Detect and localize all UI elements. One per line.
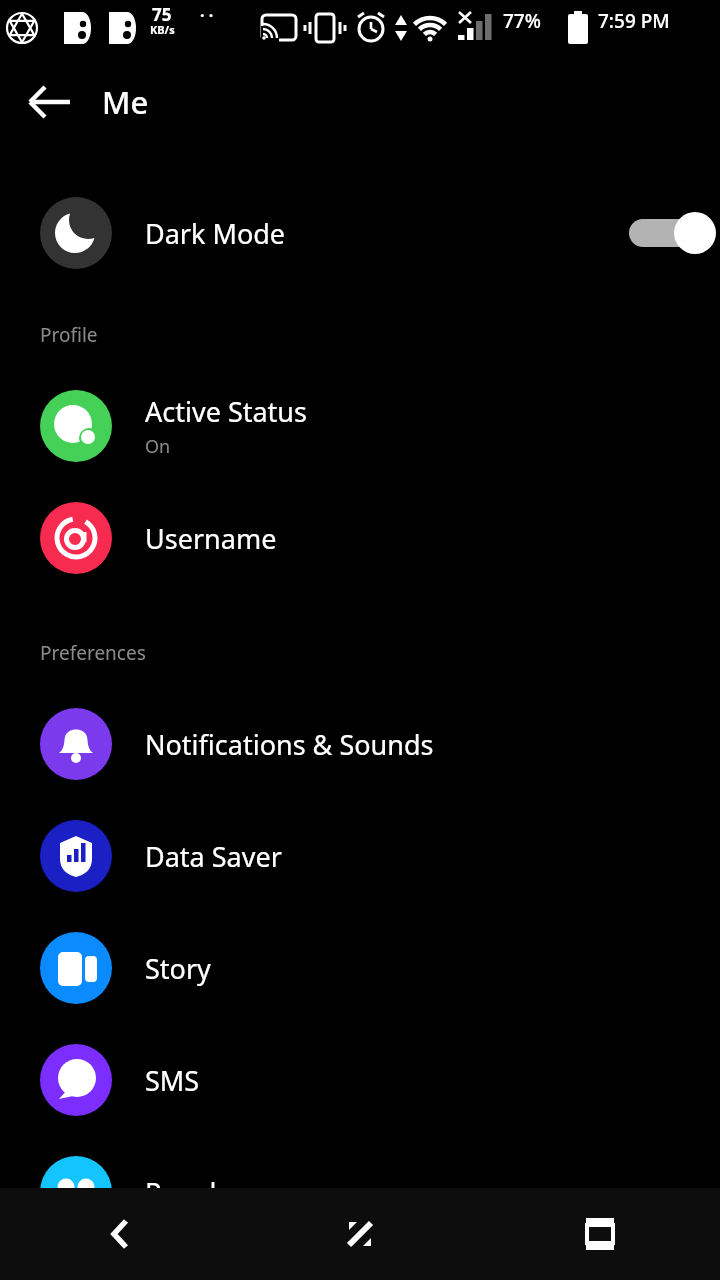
staticText: KB/s xyxy=(150,22,175,37)
button[interactable]: Data Saver xyxy=(0,800,720,912)
staticText: People xyxy=(145,1174,232,1211)
staticText: Dark Mode xyxy=(145,215,286,252)
staticText: SMS xyxy=(145,1062,200,1099)
staticText: On xyxy=(145,434,171,459)
button[interactable]: Back xyxy=(0,1188,240,1280)
staticText: Username xyxy=(145,520,277,557)
button[interactable]: Dark Mode xyxy=(0,192,720,274)
staticText: Active Status xyxy=(145,393,307,430)
staticText: Notifications & Sounds xyxy=(145,726,434,763)
button[interactable]: Notifications & Sounds xyxy=(0,688,720,800)
button[interactable]: Home xyxy=(240,1188,480,1280)
button[interactable]: Story xyxy=(0,912,720,1024)
button[interactable]: Back xyxy=(20,72,80,132)
staticText: 7:59 PM xyxy=(598,8,670,34)
staticText: Profile xyxy=(40,322,98,348)
staticText: Preferences xyxy=(40,640,146,666)
staticText: 77% xyxy=(503,8,541,34)
button[interactable]: Toggle Dark Mode xyxy=(610,197,720,269)
staticText: · · xyxy=(200,4,214,26)
button[interactable]: Username xyxy=(0,482,720,594)
staticText: Data Saver xyxy=(145,838,282,875)
staticText: Me xyxy=(102,81,149,123)
button[interactable]: Recents xyxy=(480,1188,720,1280)
button[interactable]: SMS xyxy=(0,1024,720,1136)
button[interactable]: People xyxy=(0,1136,720,1248)
staticText: Story xyxy=(145,950,211,987)
button[interactable]: Active Status xyxy=(0,370,720,482)
staticText: 75 xyxy=(152,3,172,26)
